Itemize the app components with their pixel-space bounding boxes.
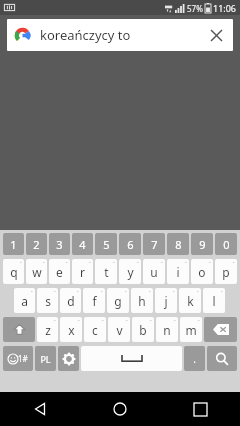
button[interactable]: a [14,288,35,313]
button[interactable]: PL [35,346,56,371]
staticText: p [222,264,230,280]
staticText: m [185,322,197,338]
staticText: ´ [126,318,128,326]
button[interactable]: n [156,317,178,342]
button[interactable]: d [60,288,81,313]
button[interactable]: Search [207,346,237,371]
button[interactable]: q [3,259,24,284]
staticText: n [163,322,171,338]
staticText: t [104,264,109,280]
staticText: ´ [20,260,22,268]
staticText: u [150,264,158,280]
button[interactable]: f [83,288,105,313]
staticText: g [114,293,122,309]
button[interactable]: 5 [95,233,117,255]
staticText: s [45,293,51,309]
staticText: ´ [113,260,115,268]
staticText: y [127,264,134,280]
button[interactable]: w [26,259,47,284]
staticText: ´ [173,289,175,297]
staticText: 8 [175,237,182,252]
staticText: a [21,293,28,309]
staticText: i [176,264,180,280]
staticText: l [212,293,216,309]
button[interactable]: Emoji and symbols [3,346,33,371]
button[interactable]: z [37,317,58,342]
button[interactable]: Space [81,346,182,371]
button[interactable]: y [119,259,141,284]
button[interactable]: 3 [49,233,70,255]
staticText: ´ [197,289,199,297]
button[interactable]: 1 [3,233,24,255]
staticText: ´ [66,260,68,268]
button[interactable]: b [132,317,154,342]
staticText: koreańczycy to [40,26,201,44]
staticText: ´ [233,260,235,268]
button[interactable]: 0 [215,233,237,255]
staticText: 6 [127,237,134,252]
button[interactable]: 7 [143,233,165,255]
staticText: r [80,264,85,280]
staticText: ´ [54,289,56,297]
staticText: ´ [43,260,45,268]
staticText: c [92,322,98,338]
button[interactable]: r [72,259,93,284]
staticText: w [32,264,42,280]
button[interactable]: p [215,259,237,284]
staticText: ´ [125,289,127,297]
staticText: f [92,293,97,309]
button[interactable]: Backspace [204,317,237,342]
button[interactable]: Home [80,392,160,426]
staticText: e [56,264,63,280]
staticText: 11:06 [213,2,237,14]
staticText: ´ [150,318,152,326]
staticText: ´ [221,289,223,297]
button[interactable]: m [180,317,202,342]
staticText: 1# [18,353,28,364]
staticText: ´ [89,260,91,268]
button[interactable]: i [167,259,189,284]
staticText: b [139,322,147,338]
staticText: 4 [79,237,86,252]
staticText: ´ [174,318,176,326]
staticText: d [67,293,75,309]
button[interactable]: h [131,288,153,313]
staticText: 1 [10,237,17,252]
button[interactable]: o [191,259,213,284]
staticText: ´ [78,318,80,326]
button[interactable]: Keyboard settings [58,346,79,371]
button[interactable]: 2 [26,233,47,255]
button[interactable]: koreańczycy to [7,19,233,51]
button[interactable]: t [95,259,117,284]
button[interactable]: j [155,288,177,313]
staticText: ´ [209,260,211,268]
button[interactable]: x [60,317,82,342]
button[interactable]: l [203,288,225,313]
staticText: j [164,293,168,309]
button[interactable]: g [107,288,129,313]
staticText: x [68,322,75,338]
staticText: v [116,322,123,338]
button[interactable]: 6 [119,233,141,255]
button[interactable]: 8 [167,233,189,255]
staticText: 0 [223,237,230,252]
staticText: 9 [199,237,206,252]
staticText: ´ [77,289,79,297]
button[interactable]: v [108,317,130,342]
button[interactable]: c [84,317,106,342]
button[interactable]: k [179,288,201,313]
button[interactable]: . [184,346,205,371]
button[interactable]: 4 [72,233,93,255]
button[interactable]: Shift [3,317,35,342]
staticText: ´ [102,318,104,326]
button[interactable]: e [49,259,70,284]
button[interactable]: Back [0,392,80,426]
staticText: ´ [31,289,33,297]
button[interactable]: s [37,288,58,313]
button[interactable]: Recent apps [160,392,240,426]
button[interactable]: 9 [191,233,213,255]
button[interactable]: Clear query [201,20,231,50]
staticText: ´ [198,318,200,326]
button[interactable]: u [143,259,165,284]
staticText: 57% [187,3,203,14]
